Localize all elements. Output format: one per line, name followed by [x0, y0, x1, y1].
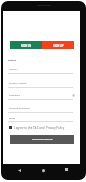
staticText: Password	[9, 93, 20, 96]
staticText: Mobile Number	[9, 81, 27, 84]
staticText: I agree to the T&C and Privacy Policy	[14, 126, 65, 130]
button[interactable]: Back	[15, 166, 24, 175]
button[interactable]: Recent apps	[62, 165, 71, 174]
staticText: CONTINUE SIGNUP	[32, 138, 53, 141]
button[interactable]: CONTINUE SIGNUP	[10, 135, 74, 144]
button[interactable]: SIGN UP	[42, 41, 74, 49]
staticText: SIGN UP	[53, 44, 64, 48]
staticText: Confirm Password	[9, 106, 30, 109]
button[interactable]: I agree to the T&C and Privacy Policy	[9, 125, 65, 130]
button[interactable]: Home	[39, 166, 48, 175]
staticText: SIGN IN	[21, 44, 32, 48]
button[interactable]: SIGN IN	[10, 41, 42, 49]
staticText: SIGNUP	[8, 59, 17, 62]
button[interactable]: Show password	[70, 92, 76, 98]
staticText: Name *	[9, 67, 18, 70]
staticText: Email	[9, 116, 16, 119]
